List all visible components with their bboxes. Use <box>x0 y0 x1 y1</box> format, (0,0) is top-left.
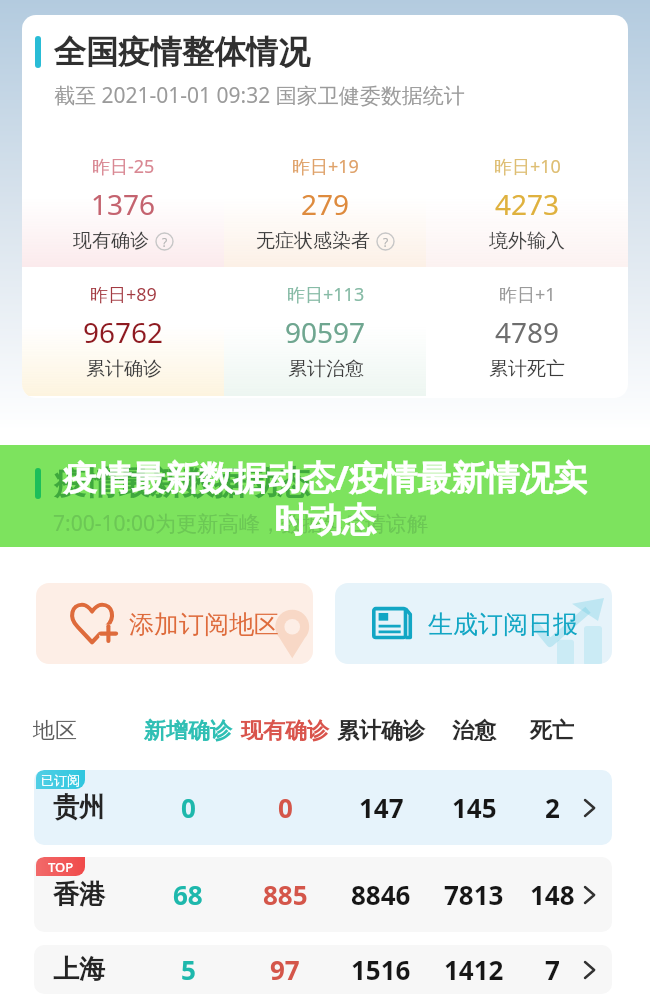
button[interactable]: 添加订阅地区 <box>36 583 313 664</box>
staticText: 死亡 <box>530 717 574 745</box>
button[interactable]: 上海 <box>34 945 612 994</box>
staticText: 累计治愈 <box>288 357 364 381</box>
button[interactable]: 已订阅 <box>34 770 612 845</box>
staticText: 昨日+89 <box>90 282 157 307</box>
staticText: 疫情最新数据动态/疫情最新情况实 时动态 <box>0 454 650 542</box>
staticText: 8846 <box>351 877 411 912</box>
staticText: TOP <box>48 858 74 876</box>
staticText: 145 <box>452 790 497 825</box>
other: Details <box>579 857 599 932</box>
staticText: 97 <box>270 952 300 987</box>
other: Details <box>579 770 599 845</box>
other: Details <box>579 945 599 994</box>
button[interactable]: 昨日+10 <box>426 140 628 267</box>
staticText: 全国疫情整体情况 <box>54 32 310 72</box>
staticText: 贵州 <box>53 791 105 824</box>
staticText: 上海 <box>53 953 105 986</box>
staticText: 已订阅 <box>41 772 80 788</box>
staticText: 5 <box>181 952 196 987</box>
staticText: 68 <box>173 877 203 912</box>
staticText: 96762 <box>83 313 164 351</box>
staticText: 地区 <box>33 717 77 745</box>
staticText: 香港 <box>53 878 105 911</box>
staticText: 昨日+113 <box>287 282 365 307</box>
button[interactable]: 昨日+113 <box>224 267 426 396</box>
button[interactable]: 昨日+19 <box>224 140 426 267</box>
staticText: 添加订阅地区 <box>129 609 279 640</box>
staticText: 累计死亡 <box>489 357 565 381</box>
staticText: 885 <box>263 877 308 912</box>
staticText: 1376 <box>91 185 156 223</box>
staticText: 昨日-25 <box>92 154 155 179</box>
staticText: 境外输入 <box>489 229 565 253</box>
button[interactable]: TOP <box>34 857 612 932</box>
staticText: 7:00-10:00为更新高峰，数据延后请谅解 <box>53 509 429 538</box>
staticText: 现有确诊 <box>241 717 329 745</box>
button[interactable]: 昨日+89 <box>22 267 224 396</box>
staticText: 7 <box>545 952 560 987</box>
staticText: 0 <box>181 790 196 825</box>
staticText: 4273 <box>495 185 560 223</box>
staticText: ? <box>383 234 389 250</box>
staticText: 昨日+10 <box>494 154 561 179</box>
staticText: 148 <box>530 877 575 912</box>
staticText: 2 <box>545 790 560 825</box>
staticText: 截至 2021-01-01 09:32 国家卫健委数据统计 <box>54 81 465 110</box>
button[interactable]: 昨日+1 <box>426 267 628 396</box>
staticText: 147 <box>359 790 404 825</box>
staticText: 现有确诊 <box>73 229 149 253</box>
staticText: 新增确诊 <box>144 717 232 745</box>
staticText: 累计确诊 <box>86 357 162 381</box>
staticText: 昨日+1 <box>499 282 556 307</box>
staticText: 279 <box>301 185 350 223</box>
staticText: 1412 <box>444 952 504 987</box>
staticText: 疫情最新数据动态 <box>54 463 310 503</box>
staticText: 治愈 <box>452 717 496 745</box>
staticText: 90597 <box>285 313 366 351</box>
staticText: 0 <box>278 790 293 825</box>
staticText: 累计确诊 <box>337 717 425 745</box>
staticText: 无症状感染者 <box>256 229 370 253</box>
staticText: 1516 <box>351 952 411 987</box>
button[interactable]: 生成订阅日报 <box>335 583 612 664</box>
staticText: 生成订阅日报 <box>428 609 578 640</box>
staticText: 7813 <box>444 877 504 912</box>
staticText: 4789 <box>495 313 560 351</box>
staticText: ? <box>162 234 168 250</box>
staticText: 昨日+19 <box>292 154 359 179</box>
button[interactable]: 昨日-25 <box>22 140 224 267</box>
